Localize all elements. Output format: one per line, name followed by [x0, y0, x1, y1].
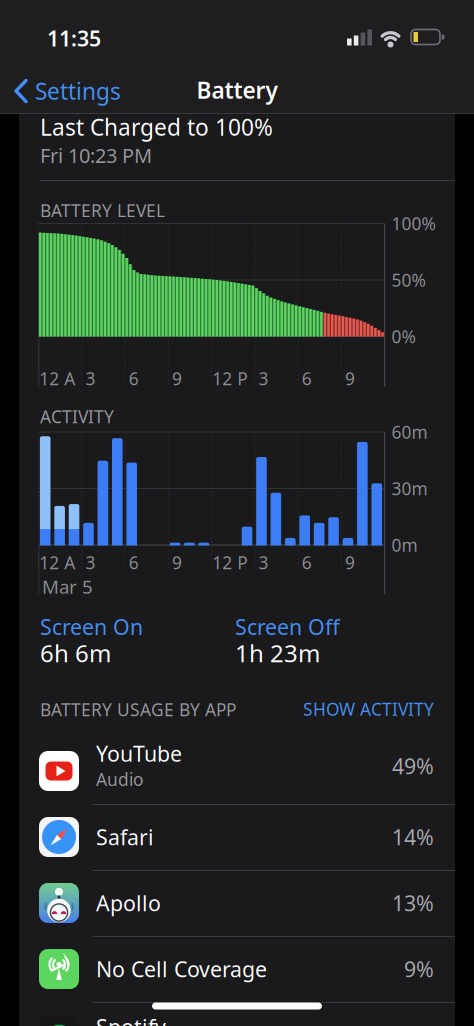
button[interactable]: Apollo	[0, 870, 474, 936]
staticText: 50%	[391, 268, 425, 291]
staticText: 11:35	[47, 24, 101, 52]
staticText: 3	[259, 367, 269, 390]
staticText: BATTERY USAGE BY APP	[40, 698, 236, 721]
staticText: 6	[129, 367, 139, 390]
staticText: Battery	[196, 75, 277, 105]
staticText: 60m	[391, 420, 427, 443]
staticText: 9	[345, 551, 355, 574]
staticText: Audio	[96, 768, 143, 791]
staticText: 3	[85, 367, 95, 390]
button[interactable]: Back to Settings	[0, 69, 121, 113]
button[interactable]: YouTube	[0, 738, 474, 804]
staticText: 12 P	[212, 367, 247, 390]
staticText: 0%	[391, 325, 415, 348]
staticText: 14%	[392, 823, 434, 851]
staticText: 49%	[392, 752, 434, 780]
staticText: 12 P	[212, 551, 247, 574]
staticText: 3	[259, 551, 269, 574]
staticText: ACTIVITY	[40, 405, 114, 428]
staticText: 9	[172, 551, 182, 574]
staticText: Apollo	[96, 889, 161, 917]
button[interactable]: SHOW ACTIVITY	[303, 697, 434, 720]
staticText: 1h 23m	[235, 637, 320, 669]
staticText: 100%	[391, 212, 435, 235]
staticText: Fri 10:23 PM	[40, 142, 152, 169]
staticText: 9	[345, 367, 355, 390]
staticText: 6h 6m	[40, 637, 111, 669]
staticText: 12 A	[39, 551, 75, 574]
staticText: 12 A	[39, 367, 75, 390]
staticText: 30m	[391, 477, 427, 500]
staticText: Settings	[35, 76, 121, 106]
staticText: No Cell Coverage	[96, 955, 267, 983]
staticText: Screen On	[40, 612, 143, 641]
staticText: YouTube	[96, 739, 182, 768]
staticText: 3	[85, 551, 95, 574]
staticText: Safari	[96, 823, 154, 851]
button[interactable]: Spotify	[0, 1002, 474, 1026]
staticText: 9%	[404, 955, 434, 983]
button[interactable]: Safari	[0, 804, 474, 870]
staticText: 9	[172, 367, 182, 390]
staticText: 6	[129, 551, 139, 574]
staticText: BATTERY LEVEL	[40, 199, 165, 222]
button[interactable]: No Cell Coverage	[0, 936, 474, 1002]
staticText: 6	[302, 551, 312, 574]
staticText: 13%	[392, 889, 434, 917]
staticText: Last Charged to 100%	[40, 112, 273, 142]
staticText: SHOW ACTIVITY	[303, 697, 434, 720]
staticText: Mar 5	[42, 574, 93, 599]
staticText: 0m	[391, 533, 417, 556]
staticText: Spotify	[96, 1013, 166, 1026]
staticText: Screen Off	[235, 612, 340, 641]
staticText: 6	[302, 367, 312, 390]
